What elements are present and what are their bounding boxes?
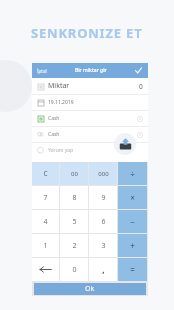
staticText: Miktar xyxy=(48,81,70,91)
staticText: Cash xyxy=(48,131,60,138)
button[interactable]: 000 xyxy=(89,162,117,185)
staticText: C xyxy=(43,169,48,178)
button[interactable]: Confirm xyxy=(133,65,144,76)
button[interactable]: × xyxy=(118,186,147,209)
staticText: 5 xyxy=(72,217,77,227)
staticText: Bir miktar gir xyxy=(75,67,107,74)
staticText: SENKRONIZE ET xyxy=(31,24,143,42)
button[interactable]: 6 xyxy=(89,210,117,233)
staticText: 6 xyxy=(101,217,106,227)
staticText: Cash xyxy=(48,115,60,122)
button[interactable]: Miktar xyxy=(32,78,148,95)
staticText: 9 xyxy=(101,193,106,203)
button[interactable]: Keyboard xyxy=(114,133,136,155)
staticText: ÷ xyxy=(130,168,135,179)
button[interactable]: 1 xyxy=(32,234,59,257)
button[interactable]: Backspace xyxy=(32,258,59,281)
button[interactable]: 9 xyxy=(89,186,117,209)
staticText: , xyxy=(102,264,105,275)
staticText: 0 xyxy=(139,82,143,91)
button[interactable]: Yorum yap xyxy=(32,143,148,158)
button[interactable]: 3 xyxy=(89,234,117,257)
button[interactable]: Cash xyxy=(32,111,148,127)
staticText: × xyxy=(130,192,135,203)
button[interactable]: 2 xyxy=(60,234,88,257)
button[interactable]: 7 xyxy=(32,186,59,209)
staticText: 8 xyxy=(72,193,77,203)
staticText: Ok xyxy=(85,284,95,294)
staticText: 1 xyxy=(43,241,48,251)
staticText: 000 xyxy=(98,170,109,178)
button[interactable]: İptal xyxy=(36,68,48,74)
staticText: 00 xyxy=(71,170,78,178)
staticText: = xyxy=(130,264,135,275)
staticText: − xyxy=(130,216,135,227)
button[interactable]: = xyxy=(118,258,147,281)
button[interactable]: C xyxy=(32,162,59,185)
staticText: 2 xyxy=(72,241,77,251)
button[interactable]: 5 xyxy=(60,210,88,233)
staticText: 0 xyxy=(72,265,77,275)
staticText: + xyxy=(130,240,135,251)
button[interactable]: 8 xyxy=(60,186,88,209)
button[interactable]: ÷ xyxy=(118,162,147,185)
staticText: 4 xyxy=(43,217,48,227)
staticText: 19.11.2019 xyxy=(48,99,74,106)
staticText: 3 xyxy=(101,241,106,251)
staticText: 7 xyxy=(43,193,48,203)
button[interactable]: − xyxy=(118,210,147,233)
staticText: İptal xyxy=(37,68,47,74)
button[interactable]: + xyxy=(118,234,147,257)
button[interactable]: Ok xyxy=(34,283,146,295)
button[interactable]: Cash xyxy=(32,127,148,143)
button[interactable]: 00 xyxy=(60,162,88,185)
button[interactable]: , xyxy=(89,258,117,281)
other: Backspace xyxy=(39,263,52,276)
button[interactable]: 4 xyxy=(32,210,59,233)
staticText: Yorum yap xyxy=(48,147,74,154)
button[interactable]: 0 xyxy=(60,258,88,281)
button[interactable]: 19.11.2019 xyxy=(32,95,148,111)
